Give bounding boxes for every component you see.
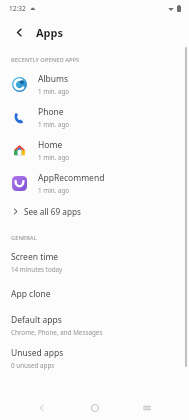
staticText: Default apps	[11, 314, 62, 326]
button[interactable]: AppRecommend	[0, 167, 189, 200]
button[interactable]: Home	[0, 134, 189, 167]
button[interactable]: Home	[84, 397, 106, 419]
staticText: 1 min. ago	[38, 153, 70, 162]
staticText: Phone	[38, 106, 64, 118]
staticText: Chrome, Phone, and Messages	[11, 328, 103, 337]
button[interactable]: Screen time	[0, 246, 189, 279]
button[interactable]: App clone	[0, 279, 189, 309]
staticText: App clone	[11, 288, 51, 300]
staticText: RECENTLY OPENED APPS	[11, 56, 80, 64]
staticText: Unused apps	[11, 347, 64, 359]
staticText: GENERAL	[11, 234, 37, 242]
staticText: 14 minutes today	[11, 265, 63, 274]
button[interactable]: Default apps	[0, 309, 189, 342]
staticText: 12:32	[9, 4, 26, 13]
button[interactable]: Albums	[0, 68, 189, 101]
staticText: 1 min. ago	[38, 186, 70, 195]
staticText: AppRecommend	[38, 172, 105, 184]
button[interactable]: Recent apps	[136, 397, 158, 419]
button[interactable]: Back	[31, 397, 53, 419]
button[interactable]: Unused apps	[0, 342, 189, 375]
staticText: 1 min. ago	[38, 87, 70, 96]
staticText: 0 unused apps	[11, 361, 55, 370]
staticText: Screen time	[11, 251, 59, 263]
staticText: Albums	[38, 73, 69, 85]
button[interactable]: Phone	[0, 101, 189, 134]
staticText: Apps	[36, 25, 64, 40]
staticText: 1 min. ago	[38, 120, 70, 129]
staticText: See all 69 apps	[24, 206, 81, 217]
button[interactable]: See all 69 apps	[0, 200, 189, 222]
button[interactable]: Back	[9, 22, 29, 42]
staticText: Home	[38, 139, 63, 151]
